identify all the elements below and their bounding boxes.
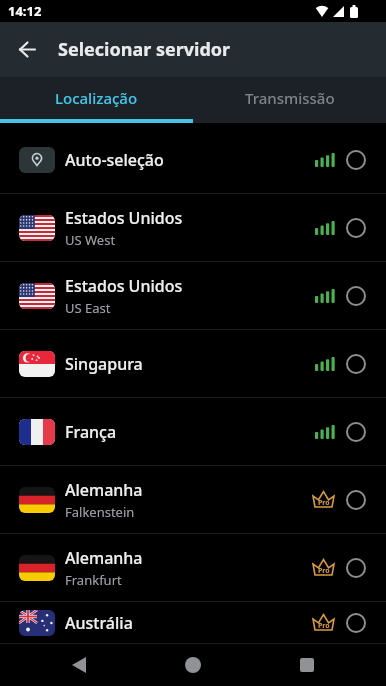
staticText: Alemanha (65, 479, 143, 501)
staticText: Selecionar servidor (58, 37, 231, 62)
button[interactable]: Alemanha (0, 466, 386, 534)
button[interactable]: Auto-seleção (0, 126, 386, 194)
button[interactable]: Singapura (0, 330, 386, 398)
button[interactable] (136, 644, 250, 686)
button[interactable] (250, 644, 364, 686)
button[interactable] (22, 644, 136, 686)
staticText: Pro (318, 621, 330, 631)
staticText: Pro (318, 566, 330, 576)
staticText: Frankfurt (65, 571, 122, 589)
staticText: França (65, 421, 117, 443)
staticText: Falkenstein (65, 503, 135, 521)
button[interactable]: Austrália (0, 602, 386, 644)
staticText: Localização (55, 88, 138, 108)
staticText: Singapura (65, 353, 143, 375)
staticText: Estados Unidos (65, 275, 183, 297)
button[interactable]: Transmissão (193, 77, 386, 119)
staticText: 14:12 (8, 2, 42, 20)
staticText: Pro (318, 498, 330, 508)
staticText: Estados Unidos (65, 207, 183, 229)
button[interactable]: Localização (0, 77, 193, 119)
staticText: US West (65, 231, 116, 249)
staticText: US East (65, 299, 111, 317)
button[interactable]: Alemanha (0, 534, 386, 602)
staticText: Austrália (65, 612, 133, 634)
staticText: Auto-seleção (65, 149, 164, 171)
button[interactable] (0, 22, 55, 77)
staticText: Transmissão (245, 88, 335, 108)
button[interactable]: Estados Unidos (0, 194, 386, 262)
button[interactable]: Estados Unidos (0, 262, 386, 330)
button[interactable]: França (0, 398, 386, 466)
staticText: Alemanha (65, 547, 143, 569)
